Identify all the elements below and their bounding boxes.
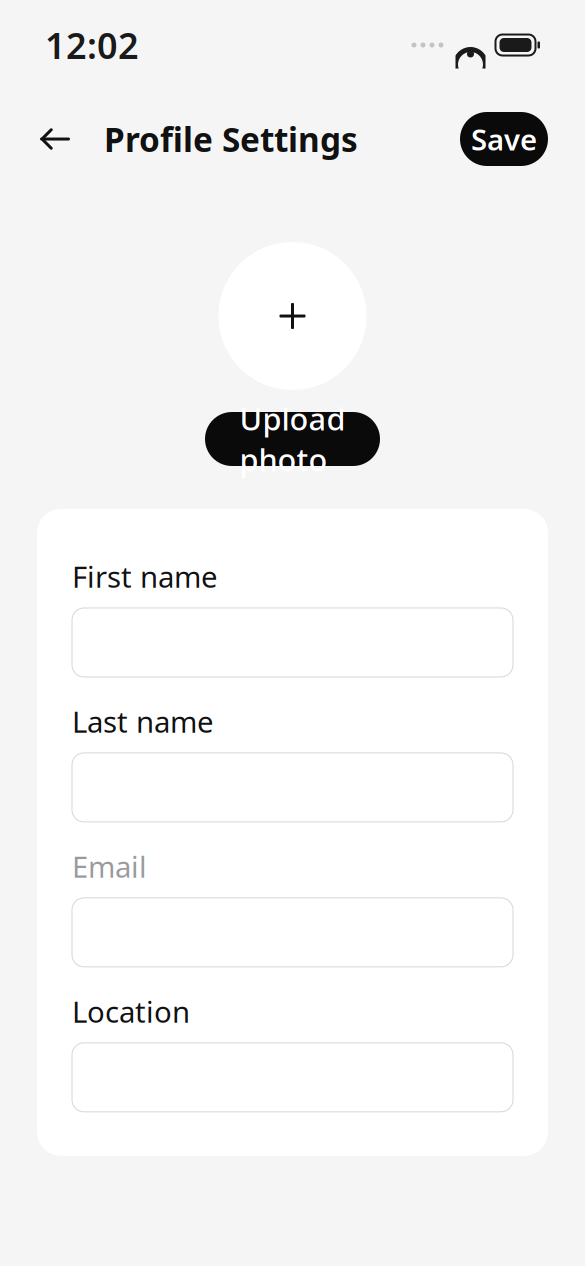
- staticText: Profile Settings: [104, 117, 358, 161]
- button[interactable]: Email: [72, 898, 513, 967]
- staticText: Last name: [72, 702, 214, 741]
- button[interactable]: Location: [72, 1043, 513, 1112]
- button[interactable]: Save: [460, 112, 548, 166]
- staticText: Location: [72, 992, 190, 1031]
- button[interactable]: Add photo: [218, 242, 366, 390]
- staticText: 12:02: [45, 21, 139, 69]
- button[interactable]: Upload photo: [205, 412, 380, 466]
- button[interactable]: First name: [72, 608, 513, 677]
- button[interactable]: Back: [32, 116, 78, 162]
- staticText: Email: [72, 847, 147, 886]
- staticText: First name: [72, 557, 218, 596]
- staticText: Save: [471, 119, 537, 158]
- staticText: Upload photo: [239, 398, 345, 480]
- button[interactable]: Last name: [72, 753, 513, 822]
